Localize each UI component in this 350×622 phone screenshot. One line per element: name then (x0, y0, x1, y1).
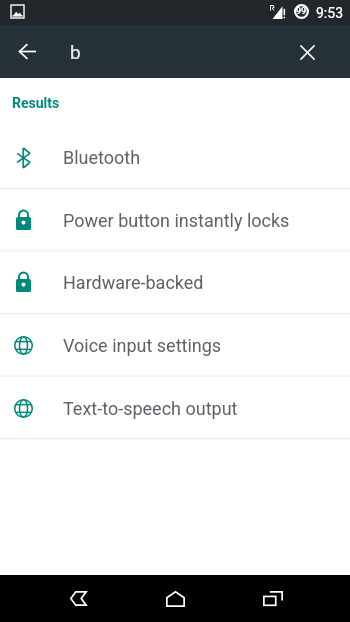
staticText: Voice input settings (63, 335, 222, 356)
staticText: Hardware-backed (63, 272, 204, 293)
staticText: Bluetooth (63, 147, 141, 168)
staticText: Text-to-speech output (63, 398, 238, 419)
button[interactable]: Bluetooth (0, 126, 350, 189)
button[interactable]: Back (54, 575, 102, 622)
button[interactable]: Voice input settings (0, 314, 350, 377)
button[interactable]: Power button instantly locks (0, 189, 350, 252)
staticText: 9:53 (316, 5, 343, 21)
staticText: Power button instantly locks (63, 210, 290, 231)
staticText: 99 (296, 6, 307, 17)
button[interactable]: Hardware-backed (0, 251, 350, 314)
button[interactable]: Home (151, 575, 199, 622)
button[interactable]: Back (3, 28, 51, 76)
button[interactable]: Text-to-speech output (0, 377, 350, 440)
button[interactable]: Clear search (283, 28, 331, 76)
button[interactable]: Recent apps (249, 575, 297, 622)
staticText: Results (12, 95, 60, 111)
staticText: b (70, 41, 81, 63)
